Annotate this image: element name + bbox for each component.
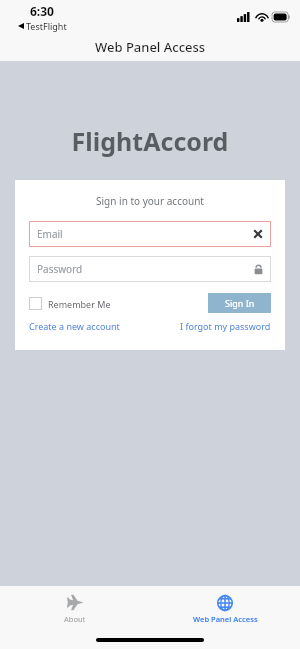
staticText: Remember Me	[48, 298, 111, 310]
staticText: Sign in to your account	[29, 194, 271, 208]
button[interactable]: Password	[29, 256, 271, 282]
staticText: FlightAccord	[0, 124, 300, 158]
staticText: TestFlight	[26, 20, 67, 32]
button[interactable]: I forgot my password	[180, 320, 271, 332]
staticText: Sign In	[225, 297, 255, 309]
staticText: Web Panel Access	[193, 614, 258, 624]
staticText: Password	[37, 262, 83, 276]
staticText: About	[64, 614, 86, 624]
staticText: 6:30	[30, 3, 54, 19]
other: Show password	[254, 264, 263, 275]
button[interactable]: Remember Me	[29, 297, 111, 310]
button[interactable]: Web Panel Access	[150, 591, 300, 624]
button[interactable]: Email	[29, 221, 271, 247]
staticText: Email	[37, 227, 63, 241]
other: Clear email	[253, 229, 263, 239]
staticText: Web Panel Access	[95, 38, 206, 56]
button[interactable]: Create a new account	[29, 320, 120, 332]
button[interactable]: Sign In	[208, 293, 271, 313]
button[interactable]: About	[0, 590, 150, 624]
